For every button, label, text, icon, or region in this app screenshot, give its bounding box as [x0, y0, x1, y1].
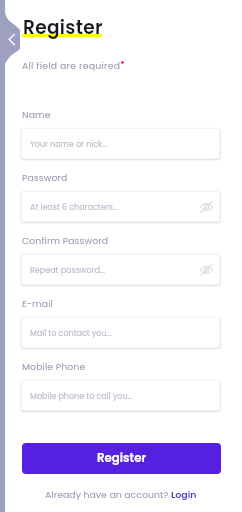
staticText: Register	[23, 15, 103, 41]
staticText: Password	[22, 171, 68, 184]
button[interactable]: At least 6 characters...	[21, 191, 220, 222]
button[interactable]: Mail to contact you...	[21, 317, 220, 348]
staticText: Mobile phone to call you...	[30, 391, 133, 402]
button[interactable]: Back	[0, 0, 22, 512]
staticText: Name	[22, 108, 51, 121]
button[interactable]: Repeat password...	[21, 254, 220, 285]
staticText: All field are required	[22, 59, 121, 72]
staticText: Your name or nick...	[30, 139, 108, 150]
staticText: At least 6 characters...	[30, 202, 118, 213]
staticText: Already have an account?	[45, 488, 171, 501]
button[interactable]: Login	[171, 488, 197, 501]
staticText: Login	[171, 488, 197, 501]
staticText: Mobile Phone	[22, 360, 86, 373]
staticText: E-mail	[22, 297, 53, 310]
staticText: Repeat password...	[30, 265, 105, 276]
button[interactable]: Register	[22, 443, 221, 474]
staticText: Mail to contact you...	[30, 328, 112, 339]
staticText: Register	[97, 450, 147, 467]
button[interactable]: Mobile phone to call you...	[21, 380, 220, 411]
button[interactable]: Your name or nick...	[21, 128, 220, 159]
staticText: Confirm Password	[22, 234, 109, 247]
